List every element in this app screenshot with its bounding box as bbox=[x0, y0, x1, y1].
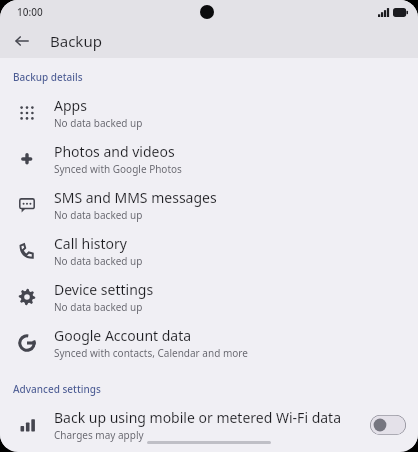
staticText: Backup bbox=[50, 31, 102, 51]
staticText: No data backed up bbox=[54, 208, 143, 222]
staticText: Backup details bbox=[13, 70, 83, 84]
staticText: SMS and MMS messages bbox=[54, 188, 217, 207]
button[interactable]: Google Account data bbox=[0, 320, 418, 366]
staticText: No data backed up bbox=[54, 116, 143, 130]
button[interactable]: Toggle backup over mobile data bbox=[370, 415, 406, 435]
button[interactable]: Photos and videos bbox=[0, 136, 418, 182]
button[interactable]: SMS and MMS messages bbox=[0, 182, 418, 228]
staticText: 10:00 bbox=[17, 5, 43, 19]
staticText: No data backed up bbox=[54, 300, 143, 314]
staticText: Back up using mobile or metered Wi-Fi da… bbox=[54, 408, 341, 427]
button[interactable]: Back bbox=[8, 27, 36, 55]
staticText: Google Account data bbox=[54, 326, 192, 345]
button[interactable]: Call history bbox=[0, 228, 418, 274]
staticText: Advanced settings bbox=[13, 382, 101, 396]
staticText: Call history bbox=[54, 234, 127, 253]
staticText: Apps bbox=[54, 96, 87, 115]
staticText: Synced with Google Photos bbox=[54, 162, 182, 176]
staticText: Synced with contacts, Calendar and more bbox=[54, 346, 248, 360]
staticText: Charges may apply bbox=[54, 428, 144, 442]
button[interactable]: Device settings bbox=[0, 274, 418, 320]
staticText: Device settings bbox=[54, 280, 154, 299]
staticText: No data backed up bbox=[54, 254, 143, 268]
staticText: Photos and videos bbox=[54, 142, 175, 161]
button[interactable]: Apps bbox=[0, 90, 418, 136]
button[interactable]: Back up using mobile or metered Wi-Fi da… bbox=[0, 402, 418, 448]
